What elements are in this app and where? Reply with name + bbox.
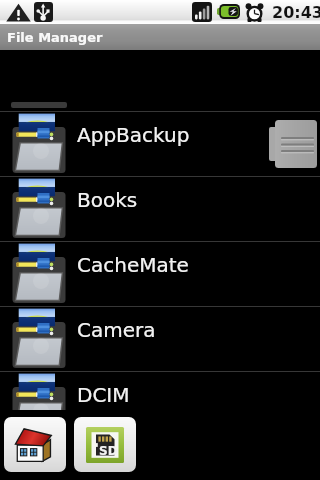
button[interactable]: AppBackup xyxy=(0,112,320,176)
staticText: 20:43 xyxy=(272,3,320,22)
staticText: File Manager xyxy=(7,30,103,45)
staticText: CacheMate xyxy=(77,253,189,276)
button[interactable]: Camera xyxy=(0,307,320,371)
button[interactable]: DCIM xyxy=(0,372,320,410)
button[interactable]: Home xyxy=(4,417,66,472)
staticText: DCIM xyxy=(77,383,130,406)
staticText: Books xyxy=(77,188,138,211)
button[interactable]: CacheMate xyxy=(0,242,320,306)
staticText: SD xyxy=(99,444,118,458)
button[interactable]: SD card xyxy=(74,417,136,472)
staticText: Camera xyxy=(77,318,156,341)
staticText: AppBackup xyxy=(77,123,190,146)
button[interactable]: Books xyxy=(0,177,320,241)
